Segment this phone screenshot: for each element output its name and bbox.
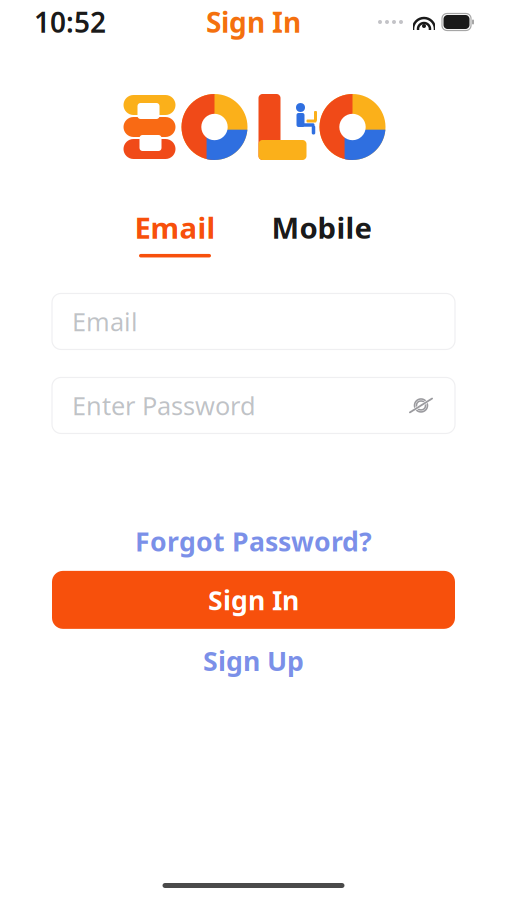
staticText: Mobile [271,208,372,247]
button[interactable]: Mobile [267,208,376,257]
button[interactable]: Sign Up [191,639,316,682]
button[interactable]: Forgot Password? [123,519,384,563]
staticText: Email [72,305,138,338]
staticText: Sign In [206,3,301,41]
staticText: Forgot Password? [135,523,372,559]
staticText: Sign Up [203,643,304,678]
staticText: Enter Password [72,389,256,422]
staticText: Sign In [208,582,299,618]
button[interactable]: Show password [407,393,435,417]
button[interactable]: Sign In [52,571,455,629]
button[interactable]: Email [130,208,219,257]
staticText: Email [134,208,215,247]
staticText: 10:52 [34,3,106,41]
